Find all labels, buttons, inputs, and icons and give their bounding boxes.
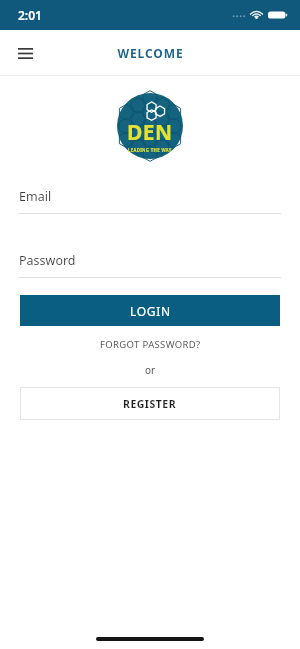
staticText: DEN xyxy=(127,118,173,147)
button[interactable]: REGISTER xyxy=(20,387,280,420)
staticText: FORGOT PASSWORD? xyxy=(100,338,201,351)
button[interactable]: LOGIN xyxy=(20,295,280,326)
staticText: REGISTER xyxy=(123,397,177,411)
staticText: LOGIN xyxy=(130,303,171,319)
button[interactable]: FORGOT PASSWORD? xyxy=(88,334,213,355)
staticText: WELCOME xyxy=(117,45,184,61)
staticText: 2:01 xyxy=(18,7,42,23)
staticText: Password xyxy=(19,252,76,269)
staticText: Email xyxy=(19,188,52,205)
staticText: or xyxy=(145,363,156,377)
staticText: LEADING THE WAY xyxy=(128,147,172,153)
button[interactable]: Open navigation menu xyxy=(9,37,41,69)
